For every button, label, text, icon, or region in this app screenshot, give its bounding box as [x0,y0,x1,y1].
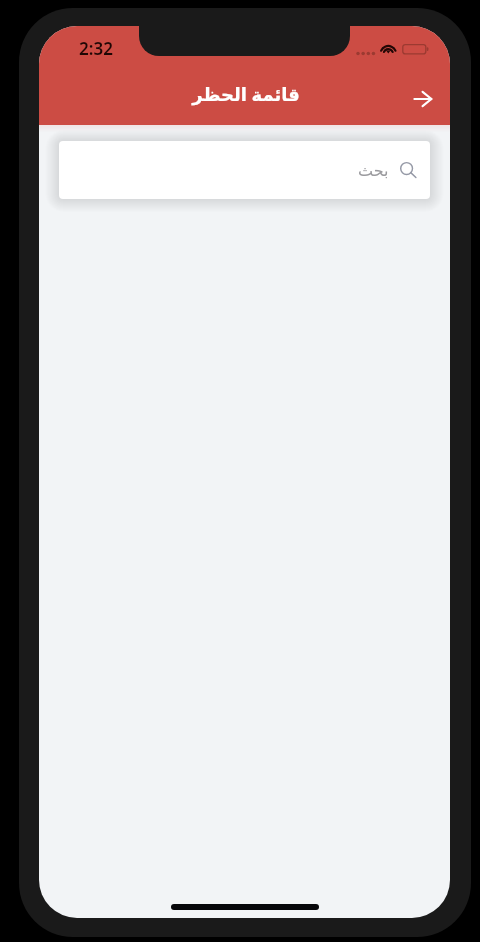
staticText: 2:32 [79,37,113,60]
staticText: بحث [358,161,389,180]
staticText: قائمة الحظر [192,82,300,107]
button[interactable]: بحث [59,141,430,199]
button[interactable]: Back [401,77,445,121]
